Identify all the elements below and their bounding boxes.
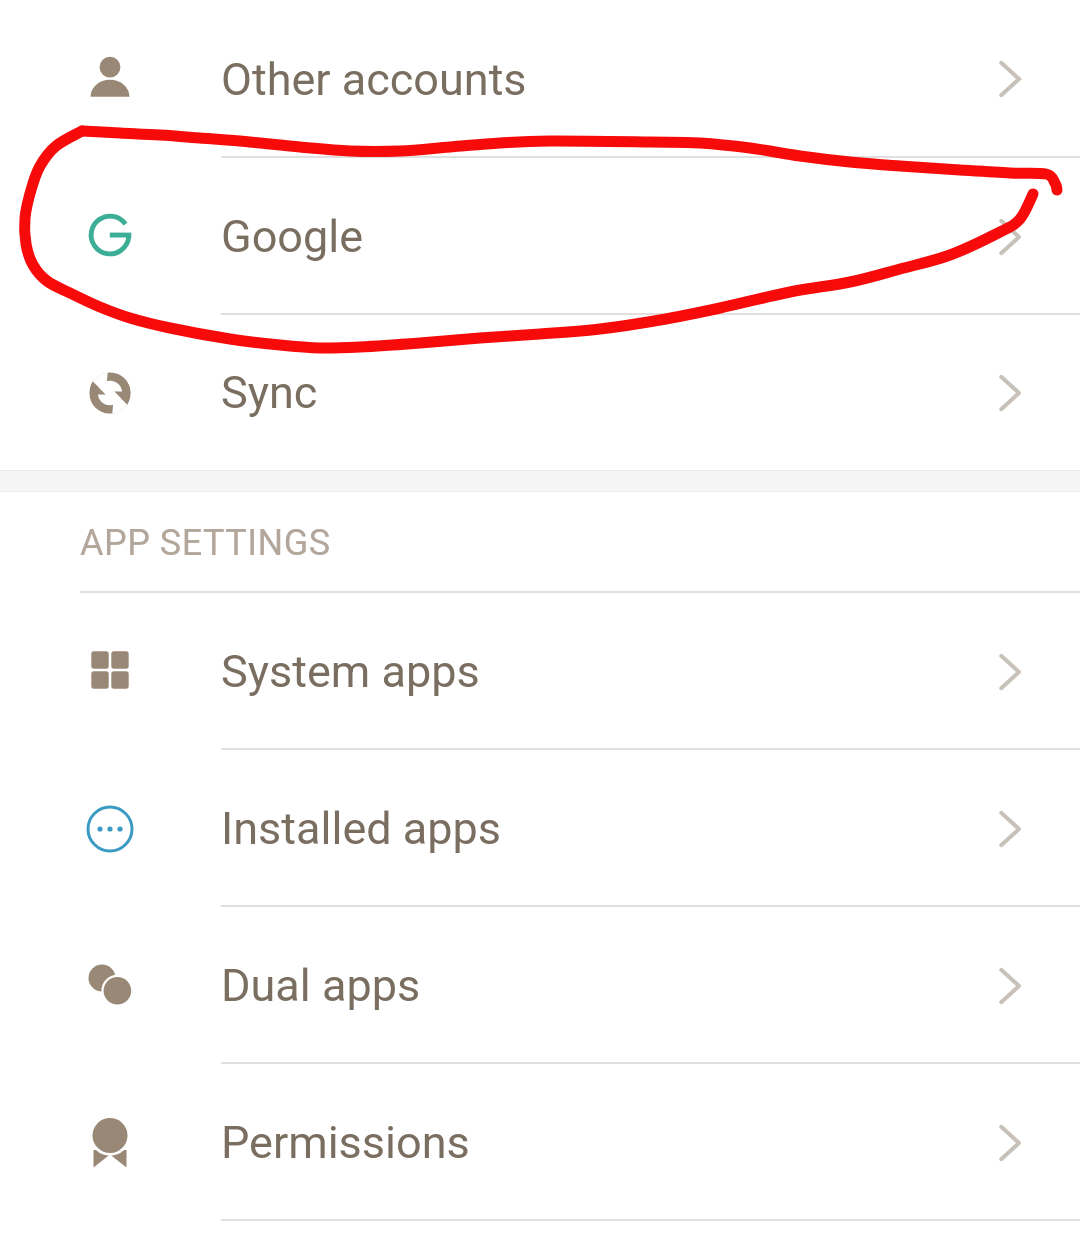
button[interactable]: Installed apps [0,750,1080,907]
staticText: APP SETTINGS [80,522,331,564]
other: Open Google [990,217,1030,257]
button[interactable]: Permissions [0,1064,1080,1221]
other: Open Dual apps [990,966,1030,1006]
staticText: Installed apps [221,802,502,855]
button[interactable]: Sync [0,315,1080,470]
staticText: Sync [221,366,318,419]
other: Open System apps [990,652,1030,692]
staticText: Other accounts [221,53,527,106]
staticText: System apps [221,645,480,698]
other: Open Installed apps [990,809,1030,849]
button[interactable]: Other accounts [0,0,1080,158]
button[interactable]: Dual apps [0,907,1080,1064]
button[interactable]: Google [0,158,1080,315]
staticText: Google [221,210,364,263]
button[interactable]: System apps [0,593,1080,750]
staticText: Dual apps [221,959,421,1012]
other: Open Permissions [990,1123,1030,1163]
staticText: Permissions [221,1116,470,1169]
other: Open Other accounts [990,59,1030,99]
other: Open Sync [990,373,1030,413]
